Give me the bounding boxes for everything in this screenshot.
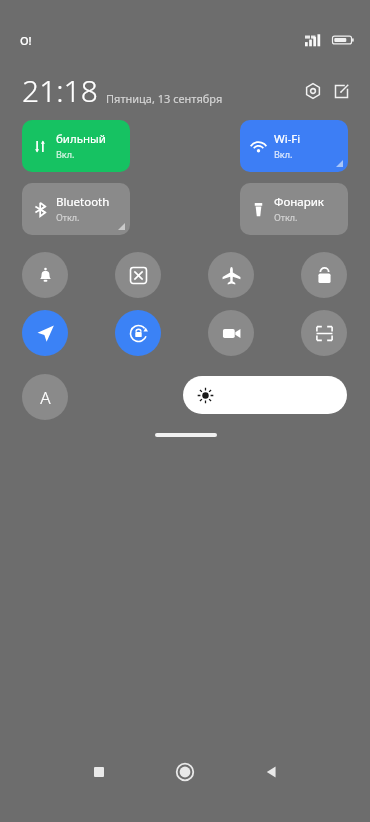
button[interactable]: Do not disturb bbox=[22, 252, 68, 298]
button[interactable]: Edit bbox=[328, 78, 354, 104]
staticText: Откл. bbox=[56, 211, 80, 223]
button[interactable]: Screenshot bbox=[115, 252, 161, 298]
staticText: Пятница, 13 сентября bbox=[106, 91, 223, 106]
button[interactable]: Settings bbox=[300, 78, 326, 104]
staticText: Фонарик bbox=[274, 194, 324, 210]
staticText: Вкл. bbox=[274, 148, 293, 160]
staticText: Wi-Fi bbox=[274, 131, 301, 147]
button[interactable]: Brightness bbox=[183, 376, 347, 414]
button[interactable]: Lock bbox=[301, 252, 347, 298]
button[interactable]: Location bbox=[22, 310, 68, 356]
staticText: 21:18 bbox=[22, 70, 98, 111]
button[interactable]: Home bbox=[161, 748, 209, 796]
button[interactable]: Screen record bbox=[208, 310, 254, 356]
button[interactable]: Scan code bbox=[301, 310, 347, 356]
button[interactable]: Mobile data bbox=[22, 120, 130, 172]
staticText: Bluetooth bbox=[56, 194, 110, 210]
button[interactable]: Back bbox=[247, 748, 295, 796]
button[interactable]: Wi-Fi bbox=[240, 120, 348, 172]
staticText: бильный bbox=[56, 131, 109, 147]
button[interactable]: Recents bbox=[75, 748, 123, 796]
button[interactable]: Bluetooth bbox=[22, 183, 130, 235]
button[interactable]: Auto rotate bbox=[115, 310, 161, 356]
staticText: Откл. bbox=[274, 211, 298, 223]
button[interactable]: Airplane mode bbox=[208, 252, 254, 298]
staticText: A bbox=[40, 386, 51, 409]
button[interactable]: Auto brightness bbox=[22, 374, 68, 420]
staticText: O! bbox=[20, 33, 32, 48]
button[interactable]: Flashlight bbox=[240, 183, 348, 235]
staticText: Вкл. bbox=[56, 148, 75, 160]
